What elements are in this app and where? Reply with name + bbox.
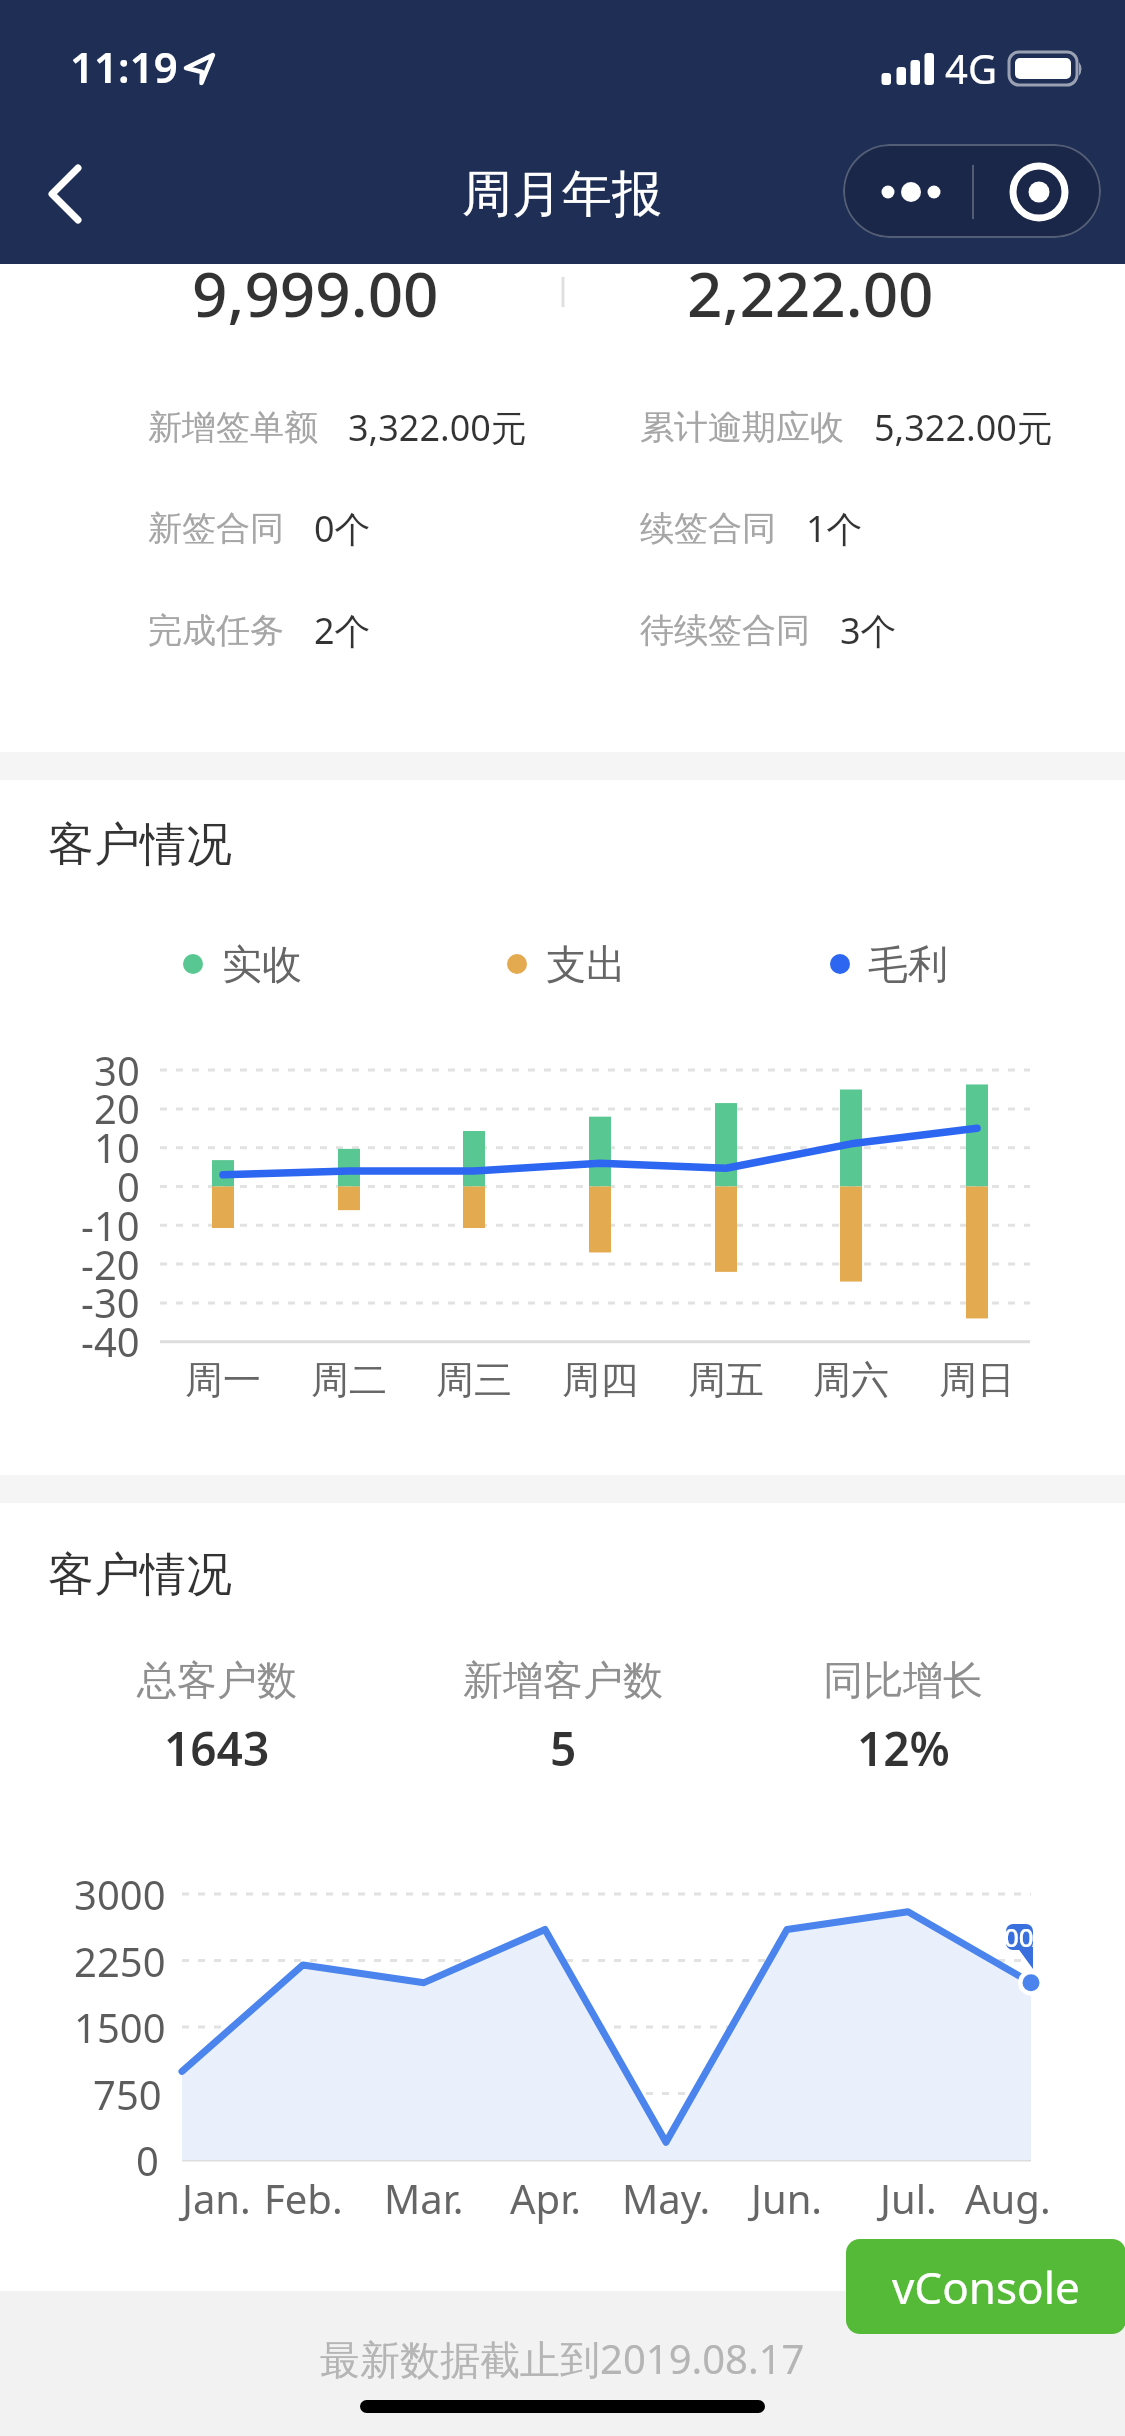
staticText: 同比增长 — [823, 1655, 983, 1705]
staticText: 11:19 — [70, 38, 178, 95]
staticText: 毛利 — [868, 939, 948, 989]
staticText: 10 — [94, 1120, 140, 1174]
staticText: 750 — [93, 2067, 162, 2121]
staticText: 4G — [945, 41, 997, 95]
staticText: 2,222.00 — [687, 251, 934, 335]
staticText: 支出 — [546, 939, 626, 989]
staticText: -20 — [81, 1237, 140, 1291]
staticText: Mar. — [384, 2171, 464, 2225]
staticText: 2250 — [74, 1934, 166, 1988]
staticText: 新增签单额 — [148, 406, 318, 449]
staticText: -40 — [81, 1314, 140, 1368]
staticText: Jun. — [751, 2171, 823, 2225]
staticText: 实收 — [222, 939, 302, 989]
staticText: Jul. — [880, 2171, 937, 2225]
staticText: 待续签合同 — [640, 609, 810, 652]
staticText: 续签合同 — [640, 507, 776, 550]
staticText: 完成任务 — [148, 609, 284, 652]
staticText: 9,999.00 — [192, 251, 439, 335]
staticText: Feb. — [264, 2171, 343, 2225]
staticText: 周月年报 — [462, 163, 662, 226]
staticText: 周日 — [939, 1356, 1015, 1404]
button[interactable] — [843, 144, 1101, 238]
staticText: 1643 — [164, 1717, 270, 1780]
staticText: 1500 — [74, 2000, 166, 2054]
staticText: 周三 — [436, 1356, 512, 1404]
staticText: 0 — [117, 1159, 140, 1213]
staticText: 客户情况 — [48, 1546, 232, 1604]
staticText: 3,322.00元 — [348, 403, 527, 452]
staticText: 周二 — [311, 1356, 387, 1404]
staticText: 20 — [94, 1081, 140, 1135]
staticText: 30 — [94, 1043, 140, 1097]
staticText: 1个 — [806, 504, 863, 553]
staticText: 5,322.00元 — [874, 403, 1053, 452]
staticText: 周一 — [185, 1356, 261, 1404]
staticText: 0 — [136, 2133, 159, 2187]
staticText: 0个 — [314, 504, 371, 553]
staticText: May. — [622, 2171, 711, 2225]
staticText: 累计逾期应收 — [640, 406, 844, 449]
button[interactable] — [24, 160, 104, 240]
staticText: 2个 — [314, 606, 371, 655]
staticText: -30 — [81, 1275, 140, 1329]
staticText: 周五 — [688, 1356, 764, 1404]
staticText: 客户情况 — [48, 816, 232, 874]
staticText: 最新数据截止到2019.08.17 — [320, 2331, 805, 2386]
staticText: Apr. — [510, 2171, 581, 2225]
staticText: vConsole — [892, 2257, 1080, 2317]
staticText: Aug. — [965, 2171, 1051, 2225]
staticText: -10 — [81, 1198, 140, 1252]
staticText: 3000 — [74, 1867, 166, 1921]
staticText: 12% — [857, 1717, 950, 1780]
staticText: Jan. — [182, 2171, 251, 2225]
staticText: 总客户数 — [137, 1655, 297, 1705]
staticText: 3个 — [840, 606, 897, 655]
button[interactable]: vConsole — [846, 2239, 1125, 2334]
staticText: 00 — [1004, 1919, 1034, 1954]
staticText: 新增客户数 — [463, 1655, 663, 1705]
staticText: 周六 — [813, 1356, 889, 1404]
staticText: 5 — [550, 1717, 577, 1780]
staticText: 新签合同 — [148, 507, 284, 550]
staticText: 周四 — [562, 1356, 638, 1404]
